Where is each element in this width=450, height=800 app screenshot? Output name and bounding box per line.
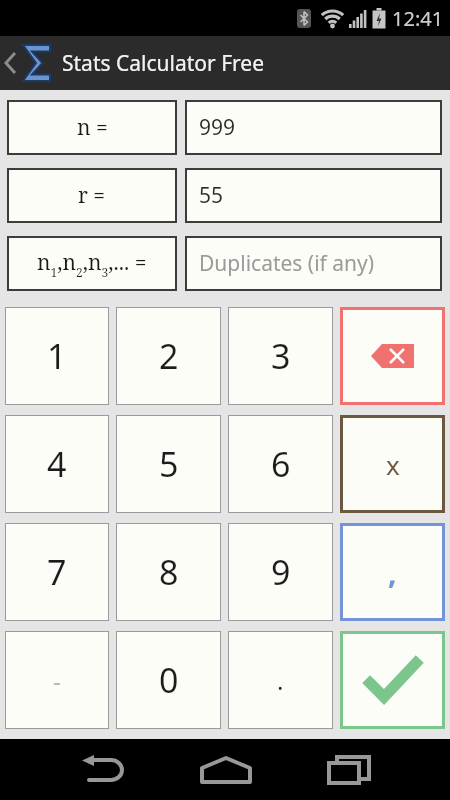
button[interactable]: 6 bbox=[228, 415, 333, 513]
staticText: . bbox=[277, 664, 284, 697]
staticText: Duplicates (if any) bbox=[199, 249, 375, 278]
button[interactable] bbox=[164, 739, 287, 800]
button[interactable] bbox=[340, 307, 445, 405]
staticText: , bbox=[388, 552, 397, 593]
staticText: n1,n2,n3,... = bbox=[37, 248, 147, 280]
staticText: 8 bbox=[159, 549, 179, 595]
button[interactable]: 4 bbox=[5, 415, 109, 513]
staticText: 4 bbox=[47, 441, 67, 487]
button[interactable]: 2 bbox=[116, 307, 221, 405]
button[interactable]: 9 bbox=[228, 523, 333, 621]
staticText: Stats Calculator Free bbox=[62, 49, 264, 78]
button[interactable]: n1,n2,n3,... = bbox=[7, 236, 177, 291]
button[interactable]: 8 bbox=[116, 523, 221, 621]
button[interactable]: 5 bbox=[116, 415, 221, 513]
staticText: 2 bbox=[159, 333, 179, 379]
button[interactable]: Stats Calculator Free bbox=[0, 36, 264, 90]
staticText: - bbox=[53, 664, 61, 697]
button[interactable]: , bbox=[340, 523, 445, 621]
button[interactable]: 1 bbox=[5, 307, 109, 405]
staticText: 999 bbox=[199, 113, 236, 142]
button[interactable]: r = bbox=[7, 168, 177, 223]
staticText: 55 bbox=[199, 181, 224, 210]
staticText: 12:41 bbox=[392, 5, 444, 32]
button[interactable]: . bbox=[228, 631, 333, 729]
button[interactable] bbox=[287, 739, 410, 800]
button[interactable]: x bbox=[340, 415, 445, 513]
staticText: 7 bbox=[47, 549, 67, 595]
button[interactable]: Duplicates (if any) bbox=[185, 236, 442, 291]
staticText: 0 bbox=[159, 657, 179, 703]
button[interactable]: 999 bbox=[185, 100, 442, 155]
button[interactable]: 55 bbox=[185, 168, 442, 223]
staticText: 5 bbox=[159, 441, 179, 487]
button[interactable]: n = bbox=[7, 100, 177, 155]
staticText: 3 bbox=[271, 333, 291, 379]
button[interactable] bbox=[41, 739, 164, 800]
staticText: 6 bbox=[271, 441, 291, 487]
staticText: r = bbox=[78, 181, 106, 210]
button[interactable]: - bbox=[5, 631, 109, 729]
staticText: x bbox=[386, 447, 400, 482]
button[interactable] bbox=[340, 631, 445, 729]
button[interactable]: 3 bbox=[228, 307, 333, 405]
staticText: 1 bbox=[47, 333, 67, 379]
staticText: 9 bbox=[271, 549, 291, 595]
staticText: n = bbox=[77, 113, 108, 142]
button[interactable]: 7 bbox=[5, 523, 109, 621]
button[interactable]: 0 bbox=[116, 631, 221, 729]
